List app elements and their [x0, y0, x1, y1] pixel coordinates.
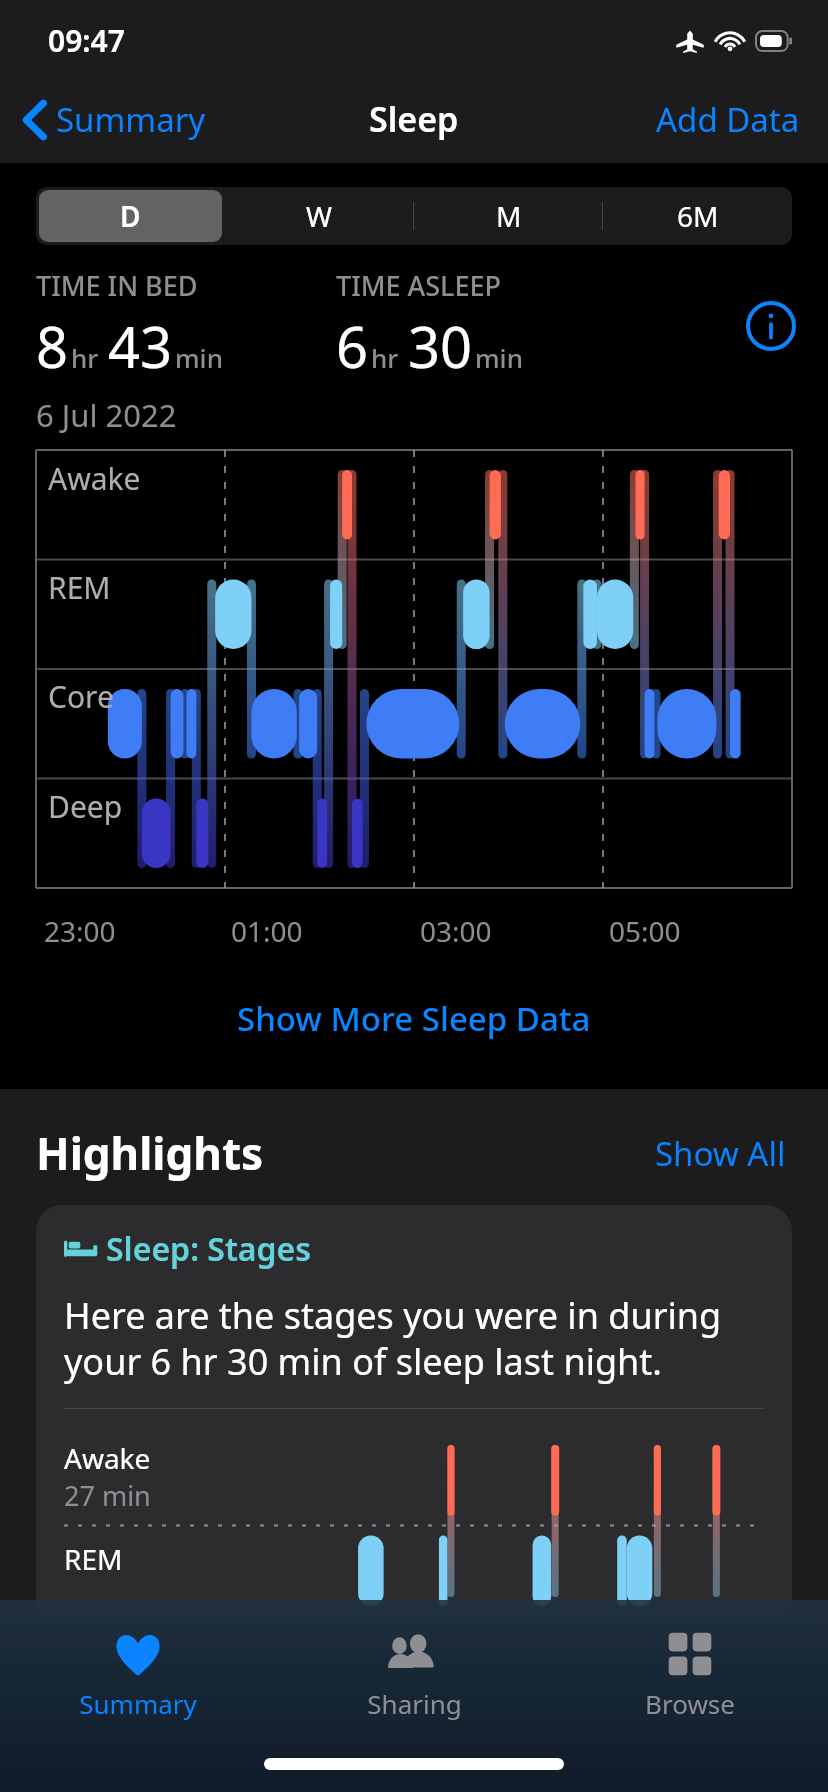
staticText: 23:00 — [44, 912, 116, 950]
staticText: 43 — [108, 308, 173, 384]
staticText: D — [120, 197, 141, 235]
staticText: 09:47 — [48, 20, 125, 61]
button[interactable]: M — [417, 190, 600, 242]
button[interactable]: W — [228, 190, 411, 242]
button[interactable]: D — [39, 190, 222, 242]
staticText: 27 min — [64, 1477, 151, 1514]
button[interactable]: Show All — [649, 1125, 792, 1182]
button[interactable]: Summary — [18, 89, 212, 150]
staticText: REM — [48, 567, 111, 608]
staticText: TIME ASLEEP — [336, 267, 502, 304]
staticText: 8 — [36, 308, 69, 384]
button[interactable]: Show More Sleep Data — [217, 988, 611, 1049]
staticText: Awake — [64, 1439, 151, 1477]
staticText: TIME IN BED — [36, 267, 198, 304]
staticText: Summary — [56, 97, 206, 142]
button[interactable]: Sharing — [276, 1622, 552, 1727]
staticText: hr — [71, 340, 99, 375]
button[interactable]: Sleep: Stages — [36, 1205, 792, 1625]
staticText: 01:00 — [231, 912, 303, 950]
staticText: 6 Jul 2022 — [36, 394, 177, 436]
staticText: 05:00 — [609, 912, 681, 950]
staticText: Deep — [48, 786, 123, 827]
staticText: Highlights — [36, 1123, 264, 1183]
staticText: 30 — [408, 308, 473, 384]
button[interactable]: Browse — [552, 1622, 828, 1727]
staticText: M — [496, 197, 522, 235]
staticText: Browse — [645, 1686, 735, 1721]
staticText: Here are the stages you were in during y… — [64, 1291, 764, 1386]
button[interactable]: Add Data — [650, 91, 806, 148]
staticText: W — [306, 197, 333, 235]
staticText: min — [175, 340, 223, 375]
staticText: Core — [48, 676, 114, 717]
staticText: Sharing — [367, 1686, 462, 1721]
staticText: hr — [371, 340, 399, 375]
button[interactable]: Summary — [0, 1622, 276, 1727]
staticText: 6 — [336, 308, 369, 384]
button[interactable]: About sleep data — [744, 299, 798, 353]
staticText: Awake — [48, 458, 141, 499]
staticText: 03:00 — [420, 912, 492, 950]
staticText: Summary — [79, 1686, 197, 1721]
staticText: REM — [64, 1540, 123, 1578]
staticText: min — [475, 340, 523, 375]
staticText: 6M — [677, 197, 719, 235]
button[interactable]: 6M — [606, 190, 789, 242]
staticText: Sleep — [369, 96, 459, 142]
staticText: Sleep: Stages — [106, 1227, 312, 1271]
